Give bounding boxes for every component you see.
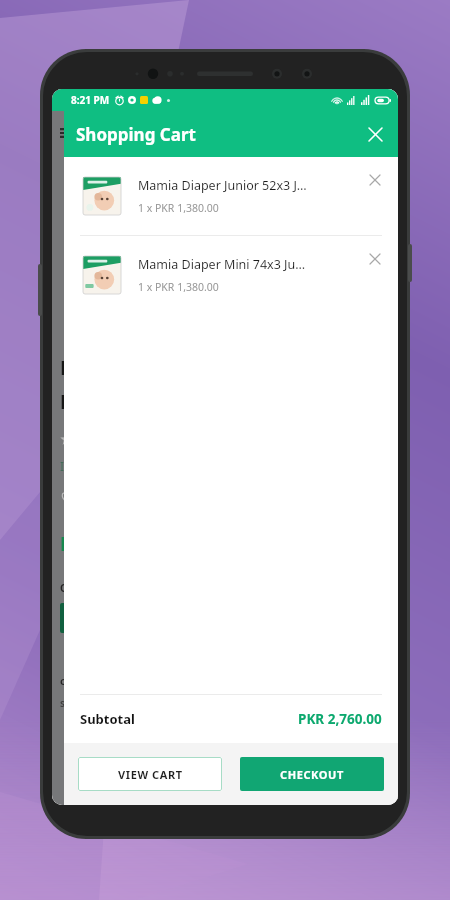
staticText: VIEW CART <box>118 767 183 782</box>
staticText: 1 x PKR 1,380.00 <box>138 280 219 294</box>
staticText: CHECKOUT <box>280 767 344 782</box>
staticText: 1 x PKR 1,380.00 <box>138 201 219 215</box>
button[interactable]: VIEW CART <box>78 757 222 791</box>
staticText: M <box>60 355 78 381</box>
staticText: Qu <box>60 581 75 595</box>
button[interactable]: Mamia Diaper Mini 74x3 Ju… <box>64 236 398 314</box>
button[interactable]: CHECKOUT <box>240 757 384 791</box>
staticText: Ca <box>60 675 72 687</box>
staticText: Mamia Diaper Junior 52x3 J… <box>138 177 307 194</box>
staticText: PKR 2,760.00 <box>298 710 382 728</box>
staticText: Mamia Diaper Mini 74x3 Ju… <box>138 256 306 273</box>
button[interactable]: Mamia Diaper Junior 52x3 J… <box>64 157 398 235</box>
staticText: In <box>60 458 72 474</box>
button[interactable]: Remove item <box>360 165 390 195</box>
staticText: P <box>60 531 72 557</box>
button[interactable]: Close <box>360 119 390 149</box>
button[interactable]: Remove item <box>360 244 390 274</box>
staticText: P <box>60 389 72 415</box>
staticText: 8:21 PM <box>71 93 110 107</box>
staticText: Shopping Cart <box>76 123 196 146</box>
staticText: Sh <box>60 697 71 709</box>
staticText: Subtotal <box>80 710 135 728</box>
